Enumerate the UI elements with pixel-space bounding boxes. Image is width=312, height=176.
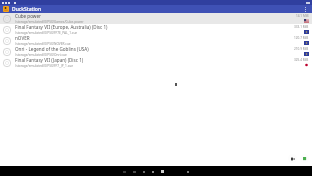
staticText: 325.4 MiB [294,58,309,62]
staticText: /storage/emulated/0/PSX/FF7_JP_1.cue [15,64,74,68]
other: App icon [3,6,9,12]
staticText: /storage/emulated/0/PSX/Games/Cube.power [15,20,84,24]
staticText: DuckStation [12,6,42,13]
staticText: /storage/emulated/0/PSX/NOVER.cue [15,42,71,46]
button[interactable]: nOVER [0,35,312,46]
staticText: /storage/emulated/0/PSX/FF7E_PAL_1.cue [15,31,78,35]
staticText: Onri - Legend of the Goblins (USA) [15,46,89,52]
button[interactable]: Final Fantasy VII (Japan) (Disc 1) [0,57,312,68]
button[interactable]: Onri - Legend of the Goblins (USA) [0,46,312,57]
staticText: Final Fantasy VII (Europe, Australia) (D… [15,24,108,30]
button[interactable]: Final Fantasy VII (Europe, Australia) (D… [0,24,312,35]
staticText: /storage/emulated/0/PSX/Onri.cue [15,53,67,57]
staticText: 14.1 MiB [296,14,309,18]
button[interactable]: More options [302,6,309,13]
staticText: 210.9 MiB [294,47,309,51]
staticText: Final Fantasy VII (Japan) (Disc 1) [15,57,84,63]
staticText: Cube power [15,13,41,19]
staticText: 333.1 MiB [294,25,309,29]
staticText: 120.7 MiB [294,36,309,40]
button[interactable]: Add game [300,154,309,163]
button[interactable]: Settings [288,154,297,163]
staticText: nOVER [15,35,30,41]
button[interactable]: Cube power [0,13,312,24]
